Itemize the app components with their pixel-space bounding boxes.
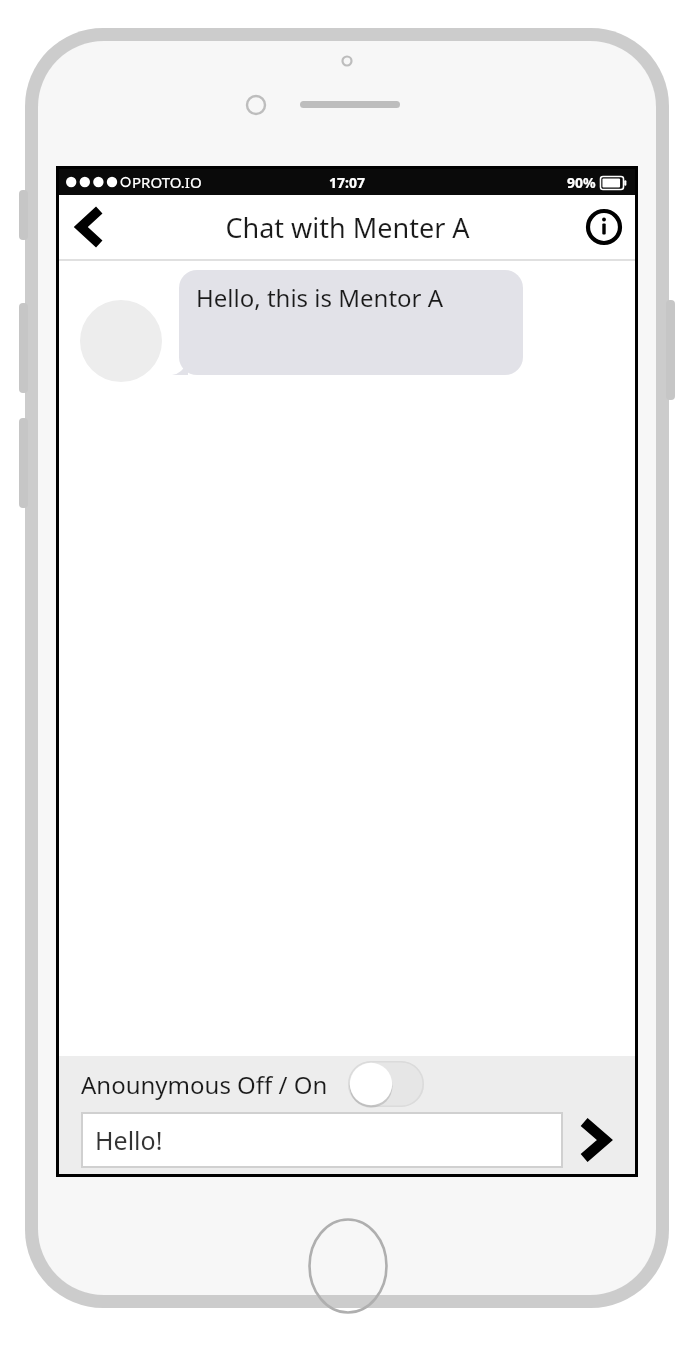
button[interactable]: Mentor A avatar [80,300,162,382]
staticText: Anounymous Off / On [81,1068,328,1101]
button[interactable]: Info [573,196,635,258]
staticText: 17:07 [329,173,365,192]
button[interactable]: Back [59,196,121,258]
button[interactable]: Hello! [83,1114,561,1166]
staticText: PROTO.IO [132,172,202,192]
button[interactable]: Anonymous toggle [348,1061,424,1107]
staticText: Hello, this is Mentor A [196,281,444,314]
staticText: Hello! [95,1123,163,1157]
staticText: 90% [567,173,596,192]
staticText: Chat with Menter A [225,209,470,246]
button[interactable]: Send [563,1112,625,1168]
button[interactable]: Hello, this is Mentor A [179,270,523,375]
